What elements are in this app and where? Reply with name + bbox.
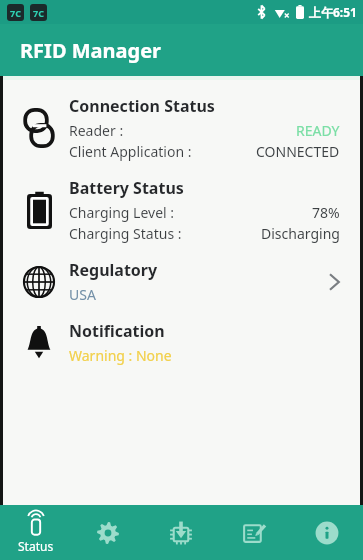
other: Battery: [27, 191, 52, 229]
staticText: 上午6:51: [309, 4, 357, 20]
staticText: Charging Level :: [69, 203, 175, 222]
staticText: Battery Status: [69, 177, 184, 199]
staticText: READY: [296, 121, 340, 140]
staticText: Warning : None: [69, 346, 172, 365]
staticText: 7C: [10, 7, 21, 19]
staticText: Client Application :: [69, 142, 192, 161]
button[interactable]: Firmware: [144, 505, 217, 560]
staticText: Reader :: [69, 121, 124, 140]
other: Connection: [24, 109, 54, 147]
staticText: Regulatory: [69, 259, 158, 281]
button[interactable]: Status: [0, 505, 72, 560]
button[interactable]: Notification: [3, 312, 360, 373]
other: Regulatory: [23, 266, 55, 298]
staticText: Connection Status: [69, 95, 215, 117]
staticText: Charging Status :: [69, 224, 182, 243]
button[interactable]: Battery: [3, 169, 360, 251]
button[interactable]: Regulatory: [3, 251, 360, 312]
button[interactable]: Edit: [217, 505, 290, 560]
button[interactable]: Connection: [3, 87, 360, 169]
staticText: Notification: [69, 320, 165, 342]
staticText: RFID Manager: [20, 37, 162, 64]
button[interactable]: About: [290, 505, 363, 560]
staticText: Status: [18, 538, 54, 554]
staticText: 78%: [312, 203, 340, 222]
staticText: 7C: [33, 7, 44, 19]
staticText: USA: [69, 285, 96, 304]
other: Notification: [24, 326, 54, 360]
staticText: Discharging: [261, 224, 340, 243]
staticText: CONNECTED: [256, 142, 340, 161]
button[interactable]: Settings: [72, 505, 144, 560]
